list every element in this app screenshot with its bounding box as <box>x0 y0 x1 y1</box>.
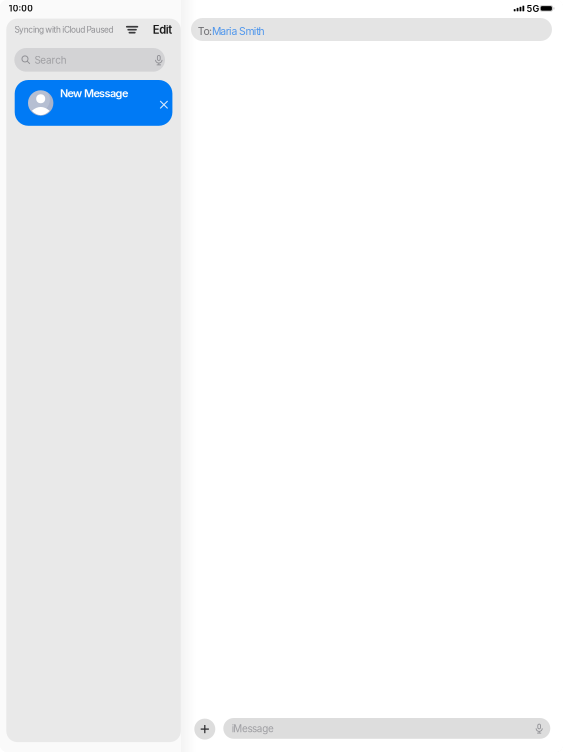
staticText: Syncing with iCloud Paused <box>14 25 113 35</box>
staticText: iMessage <box>232 723 274 734</box>
staticText: Edit <box>153 23 172 37</box>
button[interactable]: Search <box>14 48 165 72</box>
staticText: 10:00 <box>9 3 33 14</box>
button[interactable]: New Message <box>15 80 172 126</box>
staticText: New Message <box>60 87 128 100</box>
staticText: Maria Smith <box>212 25 264 37</box>
staticText: Search <box>35 54 67 66</box>
button[interactable]: iMessage <box>223 718 550 739</box>
staticText: 5G <box>527 3 539 14</box>
button[interactable]: Filter <box>120 20 144 40</box>
button[interactable]: Edit <box>148 20 172 40</box>
staticText: To: <box>198 25 212 37</box>
button[interactable]: Add attachment <box>194 719 215 740</box>
